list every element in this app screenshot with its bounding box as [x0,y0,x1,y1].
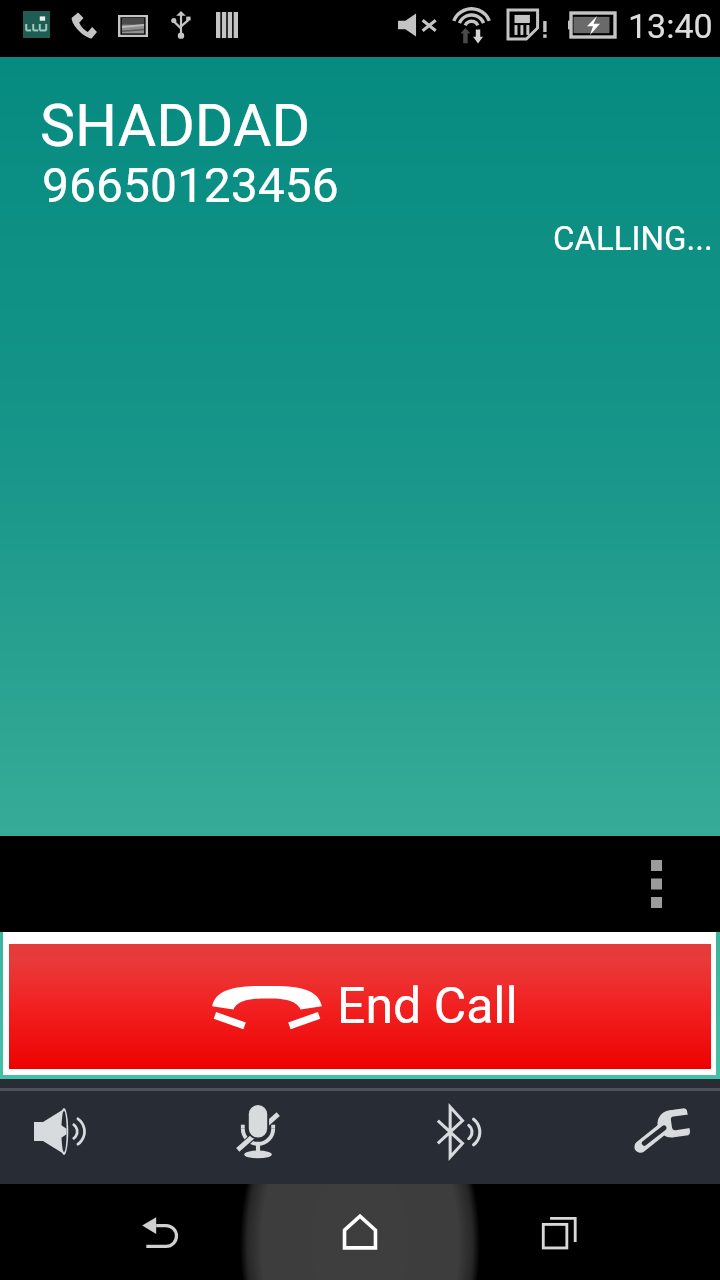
button[interactable]: Speaker [8,1079,108,1184]
staticText: 13:40 [628,6,713,46]
button[interactable]: Settings [610,1079,710,1184]
staticText: SHADDAD [40,91,311,160]
button[interactable]: Back [80,1184,240,1280]
button[interactable]: End Call [3,932,716,1075]
button[interactable]: Home [280,1184,440,1280]
staticText: End Call [337,977,518,1036]
button[interactable]: Recents [480,1184,640,1280]
staticText: CALLING... [553,219,713,258]
button[interactable]: More options [636,854,676,914]
button[interactable]: Bluetooth [408,1079,508,1184]
staticText: 96650123456 [42,157,339,213]
button[interactable]: Mute [208,1079,308,1184]
